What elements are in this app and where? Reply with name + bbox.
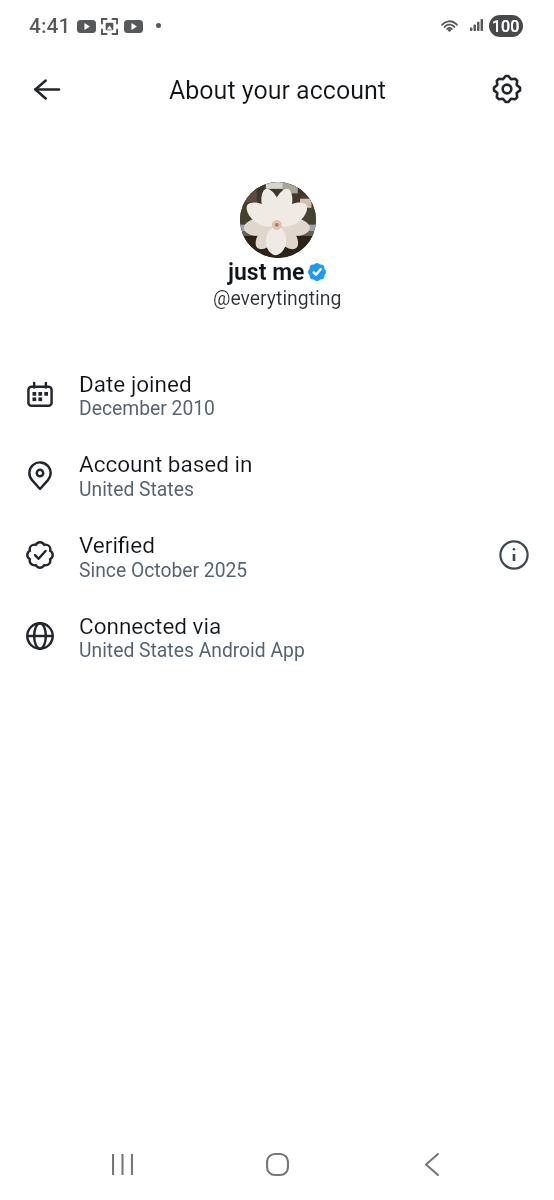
staticText: Date joined [79,371,192,397]
staticText: Verified [79,532,155,558]
button[interactable]: More info [492,533,536,577]
button[interactable]: Settings [483,65,531,113]
staticText: December 2010 [79,397,215,420]
button[interactable]: Recent apps [90,1132,154,1196]
staticText: About your account [169,76,386,105]
button[interactable]: Back [23,65,71,113]
button[interactable]: Home [245,1132,309,1196]
staticText: United States Android App [79,639,305,662]
button[interactable] [0,360,554,432]
staticText: Account based in [79,451,253,477]
staticText: just me [228,259,305,286]
button[interactable] [0,602,554,674]
staticText: 4:41 [29,14,71,39]
button[interactable] [0,521,554,593]
staticText: Since October 2025 [79,559,248,582]
staticText: Connected via [79,613,222,639]
staticText: 100 [492,17,520,36]
button[interactable] [0,440,554,512]
staticText: @everytingting [213,287,342,310]
button[interactable]: Back [400,1132,464,1196]
staticText: United States [79,478,194,501]
button[interactable]: Profile photo [240,182,316,258]
